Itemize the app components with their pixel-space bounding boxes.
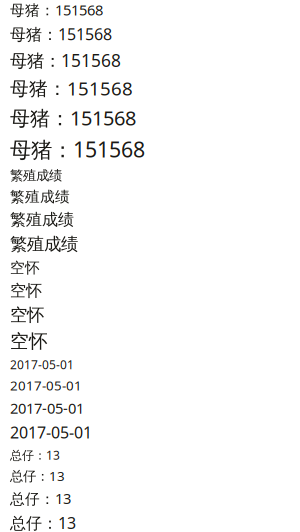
staticText: 总仔：13 [10,467,65,485]
staticText: 总仔：13 [10,489,71,508]
staticText: 2017-05-01 [10,398,84,418]
staticText: 空怀 [10,330,48,353]
staticText: 繁殖成绩 [10,188,70,206]
staticText: 母猪：151568 [10,104,136,131]
staticText: 母猪：151568 [10,23,112,45]
staticText: 总仔：13 [10,512,76,532]
staticText: 2017-05-01 [10,377,82,394]
staticText: 母猪：151568 [10,0,103,19]
staticText: 繁殖成绩 [10,167,62,184]
staticText: 2017-05-01 [10,422,92,443]
staticText: 母猪：151568 [10,76,133,100]
staticText: 母猪：151568 [10,135,145,163]
staticText: 繁殖成绩 [10,233,78,255]
staticText: 空怀 [10,259,40,277]
staticText: 繁殖成绩 [10,210,74,229]
staticText: 2017-05-01 [10,357,74,372]
staticText: 空怀 [10,304,44,326]
staticText: 空怀 [10,281,42,300]
staticText: 总仔：13 [10,447,60,463]
staticText: 母猪：151568 [10,49,121,72]
